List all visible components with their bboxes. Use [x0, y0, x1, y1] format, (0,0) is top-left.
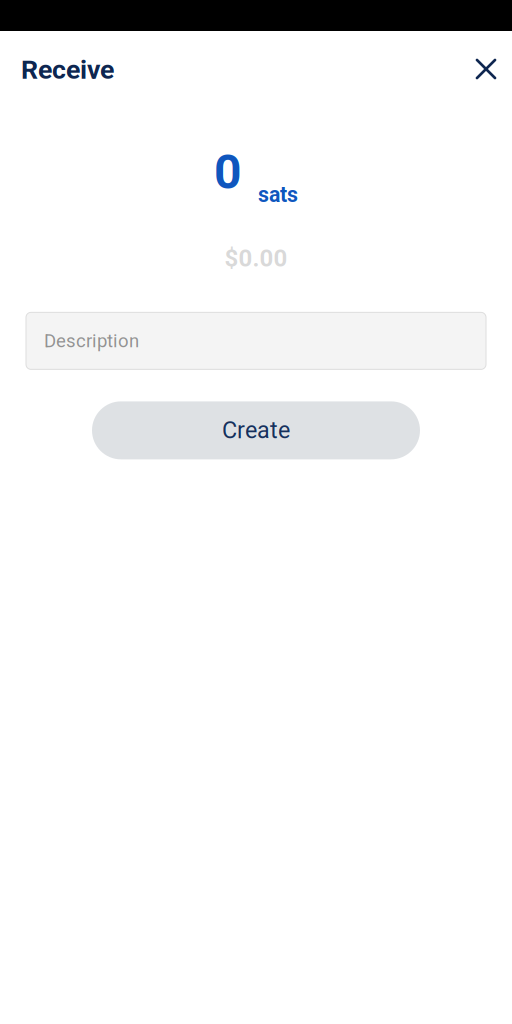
staticText: sats: [258, 182, 298, 207]
staticText: $0.00: [224, 244, 287, 272]
button[interactable]: Description: [26, 312, 486, 369]
staticText: Create: [222, 417, 290, 444]
staticText: Description: [44, 330, 139, 352]
staticText: 0: [214, 144, 242, 200]
staticText: Receive: [21, 54, 114, 85]
button[interactable]: Create: [92, 401, 420, 459]
button[interactable]: Close: [464, 47, 508, 91]
